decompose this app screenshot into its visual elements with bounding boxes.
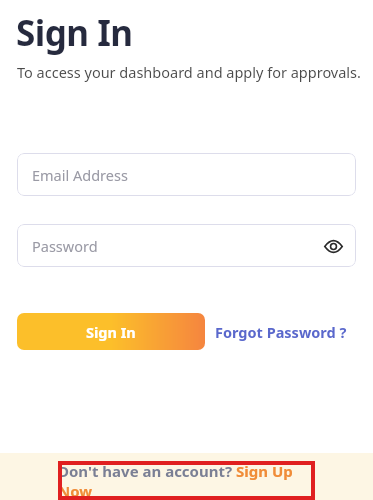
- staticText: Sign In: [86, 322, 136, 342]
- button[interactable]: Show password: [321, 234, 345, 258]
- staticText: Password: [32, 236, 98, 256]
- staticText: Email Address: [32, 165, 128, 185]
- button[interactable]: Email Address: [17, 153, 356, 196]
- staticText: Forgot Password ?: [215, 322, 347, 342]
- button[interactable]: Forgot Password ?: [206, 313, 356, 350]
- button[interactable]: Don't have an account? Sign Up Now: [58, 461, 315, 500]
- button[interactable]: Sign In: [17, 313, 205, 350]
- staticText: To access your dashboard and apply for a…: [17, 62, 361, 82]
- staticText: Sign In: [16, 9, 133, 57]
- staticText: Don't have an account? Sign Up Now: [58, 461, 315, 500]
- button[interactable]: Password: [17, 224, 356, 267]
